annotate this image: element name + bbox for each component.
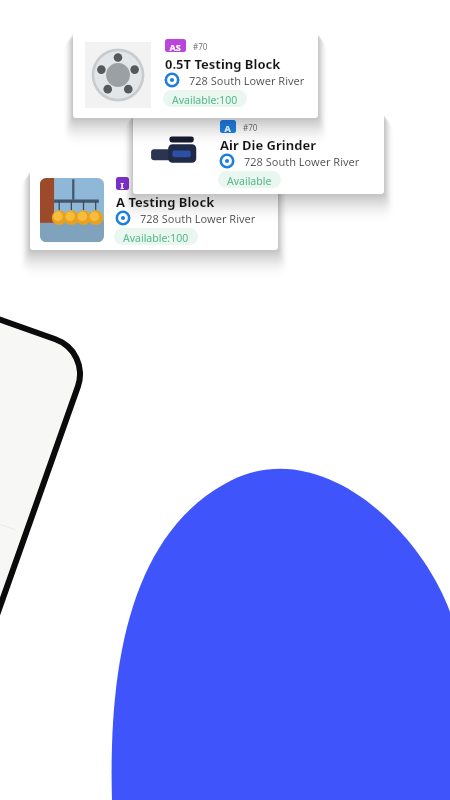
- button[interactable]: More: [112, 602, 160, 650]
- button[interactable]: A Testing Block: [30, 170, 278, 250]
- button[interactable]: 0.5T Testing Block: [73, 32, 318, 118]
- button[interactable]: Air Die Grinder: [133, 113, 384, 194]
